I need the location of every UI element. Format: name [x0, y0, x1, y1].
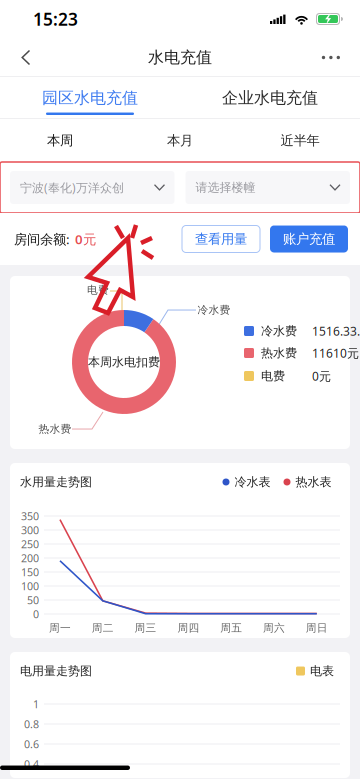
- staticText: 电用量走势图: [20, 664, 92, 678]
- button[interactable]: 近半年: [240, 119, 360, 162]
- staticText: 周三: [135, 621, 157, 634]
- staticText: 周二: [92, 621, 114, 634]
- staticText: 100: [21, 579, 39, 593]
- staticText: 请选择楼幢: [195, 180, 255, 195]
- button[interactable]: 查看用量: [182, 225, 260, 252]
- staticText: 周四: [177, 621, 199, 634]
- staticText: 本月: [167, 132, 193, 149]
- staticText: 150: [21, 565, 39, 579]
- staticText: 企业水电充值: [222, 88, 318, 108]
- staticText: 0.8: [24, 717, 39, 731]
- button[interactable]: 本月: [120, 119, 240, 162]
- staticText: 电费: [261, 369, 285, 383]
- staticText: 300: [21, 523, 39, 537]
- staticText: 350: [21, 509, 39, 523]
- staticText: 0元: [312, 368, 331, 384]
- staticText: 周五: [220, 621, 242, 634]
- staticText: 0: [33, 607, 39, 621]
- staticText: 近半年: [280, 132, 319, 149]
- staticText: 冷水费: [197, 303, 230, 316]
- staticText: 200: [21, 551, 39, 565]
- button[interactable]: 企业水电充值: [180, 77, 360, 119]
- button[interactable]: 账户充值: [270, 225, 348, 252]
- staticText: 查看用量: [195, 231, 247, 247]
- button[interactable]: 更多: [308, 41, 360, 74]
- button[interactable]: 本周: [0, 119, 120, 162]
- staticText: 250: [21, 537, 39, 551]
- staticText: 周一: [49, 621, 71, 634]
- staticText: 电表: [310, 664, 334, 678]
- staticText: 周日: [306, 621, 328, 634]
- staticText: 本周水电扣费: [88, 355, 160, 369]
- staticText: 水电充值: [148, 48, 212, 67]
- staticText: 房间余额:: [14, 230, 70, 248]
- staticText: 50: [27, 593, 39, 607]
- staticText: 本周: [47, 132, 73, 149]
- staticText: 0元: [75, 230, 96, 248]
- staticText: 热水费: [261, 346, 297, 360]
- staticText: 热水表: [295, 475, 331, 489]
- staticText: 0.6: [24, 737, 39, 751]
- staticText: 冷水费: [261, 324, 297, 338]
- staticText: 宁波(奉化)万洋众创: [20, 179, 124, 195]
- button[interactable]: 请选择楼幢: [185, 171, 350, 204]
- staticText: 账户充值: [283, 231, 335, 247]
- staticText: 11610元: [312, 345, 359, 361]
- staticText: 1516.33元: [312, 323, 360, 339]
- staticText: 0.4: [24, 757, 39, 771]
- staticText: 周六: [263, 621, 285, 634]
- staticText: 电费: [87, 283, 109, 296]
- staticText: 1: [33, 697, 39, 711]
- staticText: 园区水电充值: [42, 88, 138, 108]
- button[interactable]: 返回: [0, 38, 45, 76]
- staticText: 热水费: [38, 422, 71, 435]
- staticText: 15:23: [33, 7, 78, 30]
- button[interactable]: 园区水电充值: [0, 77, 180, 119]
- staticText: 水用量走势图: [20, 475, 92, 489]
- button[interactable]: 宁波(奉化)万洋众创: [10, 171, 174, 204]
- staticText: 冷水表: [234, 475, 270, 489]
